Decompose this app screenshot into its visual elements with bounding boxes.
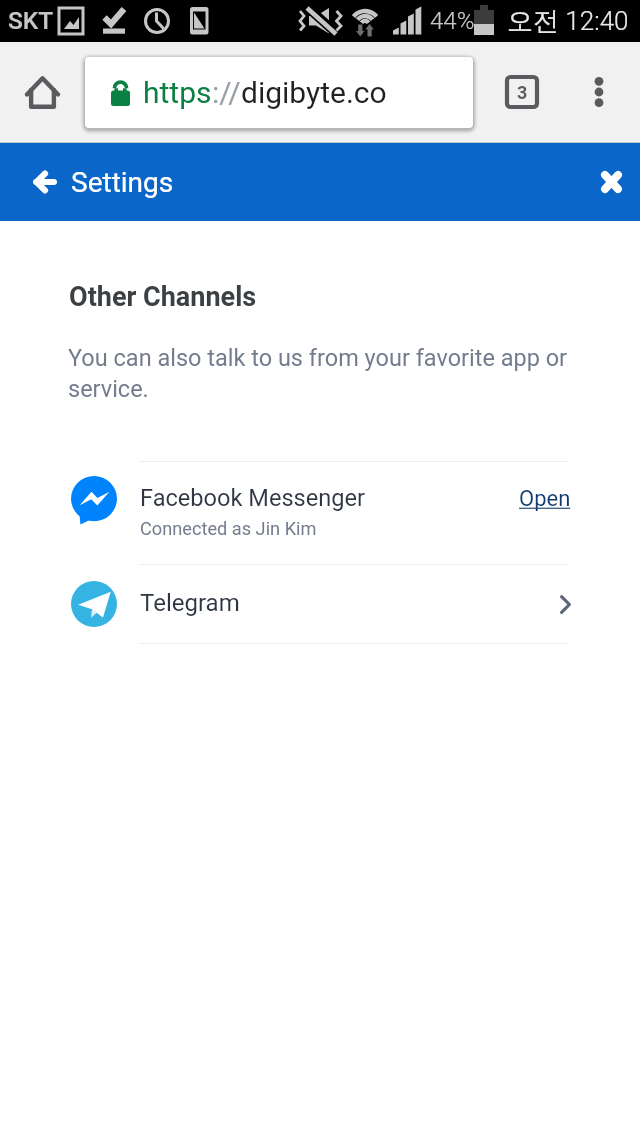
staticText: 오전 12:40 (507, 5, 629, 38)
staticText: Settings (71, 166, 174, 199)
other: Open Telegram (552, 591, 578, 617)
staticText: Open (519, 486, 571, 512)
staticText: Telegram (140, 589, 240, 617)
staticText: You can also talk to us from your favori… (68, 344, 568, 403)
button[interactable]: https (85, 57, 473, 128)
button[interactable]: Tabs (494, 64, 550, 120)
staticText: 44% (430, 7, 475, 35)
button[interactable]: Open (519, 486, 571, 512)
button[interactable]: Facebook Messenger (0, 462, 640, 564)
button[interactable]: Close (583, 154, 639, 210)
staticText: Other Channels (69, 281, 257, 313)
button[interactable]: More options (571, 64, 627, 120)
staticText: :// (212, 75, 241, 110)
staticText: https (143, 75, 212, 110)
button[interactable]: Telegram (0, 565, 640, 643)
staticText: Connected as Jin Kim (140, 518, 317, 539)
staticText: SKT (8, 6, 54, 35)
button[interactable]: Home (14, 64, 70, 120)
staticText: digibyte.co (241, 75, 387, 110)
staticText: Facebook Messenger (140, 484, 366, 512)
button[interactable]: Settings (0, 143, 174, 221)
staticText: 3 (517, 82, 528, 103)
